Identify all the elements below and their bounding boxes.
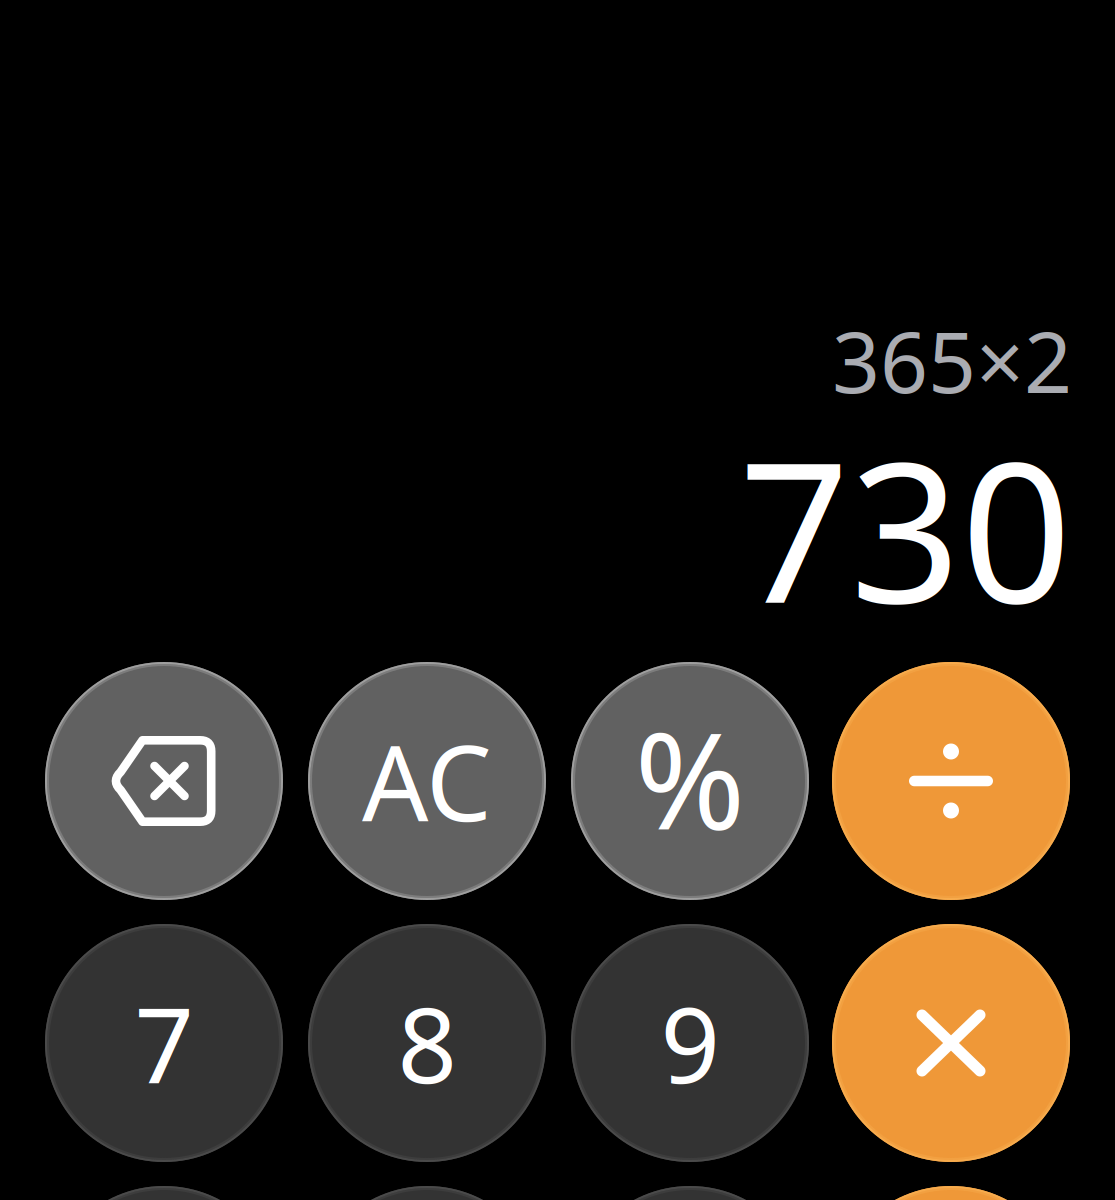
staticText: 7 bbox=[134, 974, 193, 1112]
staticText: AC bbox=[362, 712, 492, 850]
button[interactable]: 7 bbox=[45, 924, 283, 1162]
button[interactable]: AC bbox=[308, 662, 546, 900]
button[interactable]: 6 bbox=[571, 1186, 809, 1200]
staticText: % bbox=[634, 689, 745, 867]
button[interactable]: Delete bbox=[45, 662, 283, 900]
staticText: 365×2 bbox=[832, 305, 1072, 416]
staticText: 730 bbox=[739, 399, 1072, 656]
button[interactable]: 4 bbox=[45, 1186, 283, 1200]
button[interactable]: % bbox=[571, 662, 809, 900]
button[interactable]: 5 bbox=[308, 1186, 546, 1200]
button[interactable]: Divide bbox=[832, 662, 1070, 900]
button[interactable]: 8 bbox=[308, 924, 546, 1162]
button[interactable]: Subtract bbox=[832, 1186, 1070, 1200]
staticText: 8 bbox=[397, 974, 456, 1112]
staticText: 9 bbox=[660, 974, 719, 1112]
button[interactable]: Multiply bbox=[832, 924, 1070, 1162]
button[interactable]: 9 bbox=[571, 924, 809, 1162]
